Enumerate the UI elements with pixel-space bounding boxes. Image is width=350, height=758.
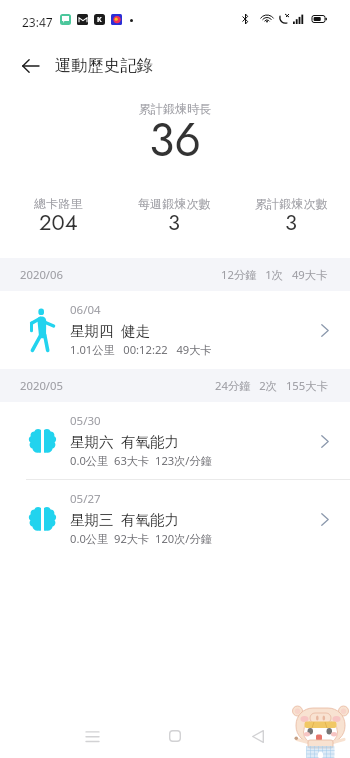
button[interactable]: 05/27 [0,480,350,558]
staticText: 36 [0,106,350,173]
staticText: 06/04 [70,302,101,318]
staticText: 累計鍛煉次數 [255,196,328,211]
button[interactable]: 05/30 [0,402,350,480]
staticText: 05/30 [70,413,101,429]
button[interactable]: 06/04 [0,291,350,369]
staticText: 運動歷史記錄 [55,55,153,76]
staticText: 0.0公里 92大卡 120次/分鐘 [70,531,212,546]
staticText: 星期四 健走 [70,320,151,340]
staticText: 總卡路里 [34,196,83,211]
staticText: 3 [168,206,181,238]
staticText: 12分鐘 1次 49大卡 [221,267,328,282]
staticText: K [97,15,102,25]
staticText: 23:47 [22,14,53,30]
staticText: 3 [285,206,298,238]
staticText: 204 [39,206,78,238]
staticText: 05/27 [70,491,101,507]
button[interactable]: Home [155,716,195,756]
staticText: 每週鍛煉次數 [138,196,211,211]
staticText: 星期三 有氧能力 [70,509,180,529]
button[interactable]: Back [8,51,52,81]
staticText: 星期六 有氧能力 [70,431,180,451]
staticText: 2020/06 [20,267,63,282]
staticText: 24分鐘 2次 155大卡 [215,378,328,393]
staticText: 1.01公里 00:12:22 49大卡 [70,342,212,357]
staticText: 累計鍛煉時長 [0,101,350,116]
staticText: 0.0公里 63大卡 123次/分鐘 [70,453,212,468]
button[interactable]: Recents [72,716,112,756]
staticText: 2020/05 [20,378,63,393]
button[interactable]: Back [238,716,278,756]
